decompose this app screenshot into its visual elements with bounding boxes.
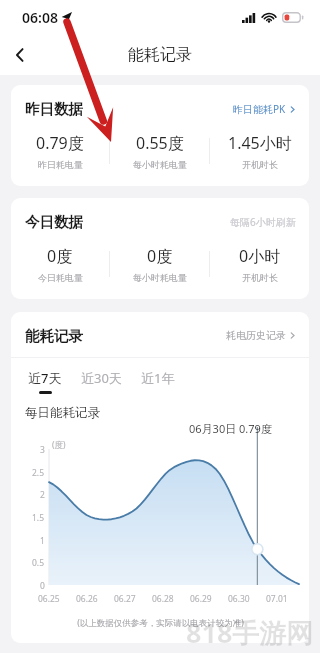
staticText: 0度 [47, 245, 73, 267]
staticText: 0.5 [32, 557, 45, 569]
staticText: 3 [40, 444, 45, 456]
button[interactable]: 0小时 [210, 245, 309, 283]
staticText: 今日耗电量 [38, 272, 83, 283]
staticText: 2 [40, 489, 45, 501]
staticText: 1.5 [32, 512, 45, 524]
button[interactable]: 近1年 [136, 367, 180, 396]
staticText: 0.79度 [36, 132, 84, 154]
button[interactable]: 近7天 [23, 367, 67, 396]
button[interactable]: 0度 [11, 245, 109, 283]
button[interactable]: 每隔6小时刷新 [229, 212, 297, 232]
staticText: 2.5 [32, 467, 45, 479]
staticText: 昨日数据 [25, 100, 83, 118]
staticText: 06:08 [22, 8, 58, 27]
staticText: 昨日耗电量 [38, 159, 83, 170]
staticText: 06.25 [38, 593, 60, 605]
staticText: 每小时耗电量 [133, 272, 187, 283]
button[interactable]: 0度 [110, 245, 209, 283]
staticText: 0度 [147, 245, 173, 267]
staticText: 06.28 [152, 593, 174, 605]
staticText: 06.29 [190, 593, 212, 605]
staticText: 06.26 [76, 593, 98, 605]
button[interactable]: Back [0, 35, 40, 75]
button[interactable]: 1.45小时 [210, 132, 309, 170]
staticText: 能耗记录 [128, 45, 192, 65]
staticText: 1.45小时 [228, 132, 292, 154]
staticText: 近7天 [28, 369, 62, 387]
button[interactable]: 耗电历史记录 [225, 326, 297, 345]
staticText: 近1年 [141, 369, 175, 387]
staticText: 开机时长 [242, 272, 278, 283]
button[interactable]: 0.79度 [11, 132, 109, 170]
staticText: 近30天 [81, 369, 122, 387]
staticText: 耗电历史记录 [226, 329, 286, 342]
staticText: 每隔6小时刷新 [230, 215, 296, 229]
staticText: 昨日能耗PK [233, 102, 286, 116]
staticText: (度) [52, 439, 66, 451]
button[interactable]: 近30天 [76, 367, 127, 396]
staticText: 1 [40, 535, 45, 547]
staticText: 今日数据 [25, 213, 83, 231]
staticText: 06.30 [228, 593, 250, 605]
staticText: (以上数据仅供参考，实际请以电表计较为准) [77, 617, 244, 629]
button[interactable]: 0.55度 [110, 132, 209, 170]
staticText: 能耗记录 [25, 327, 83, 345]
staticText: 07.01 [266, 593, 288, 605]
staticText: 0 [40, 580, 45, 592]
staticText: 818手游网 [186, 614, 314, 651]
staticText: 0.55度 [136, 132, 184, 154]
staticText: 开机时长 [242, 159, 278, 170]
staticText: 06月30日 0.79度 [189, 421, 272, 436]
staticText: 0小时 [239, 245, 281, 267]
button[interactable]: 昨日能耗PK [232, 99, 297, 119]
staticText: 06.27 [114, 593, 136, 605]
staticText: 每小时耗电量 [133, 159, 187, 170]
staticText: 每日能耗记录 [25, 405, 100, 421]
